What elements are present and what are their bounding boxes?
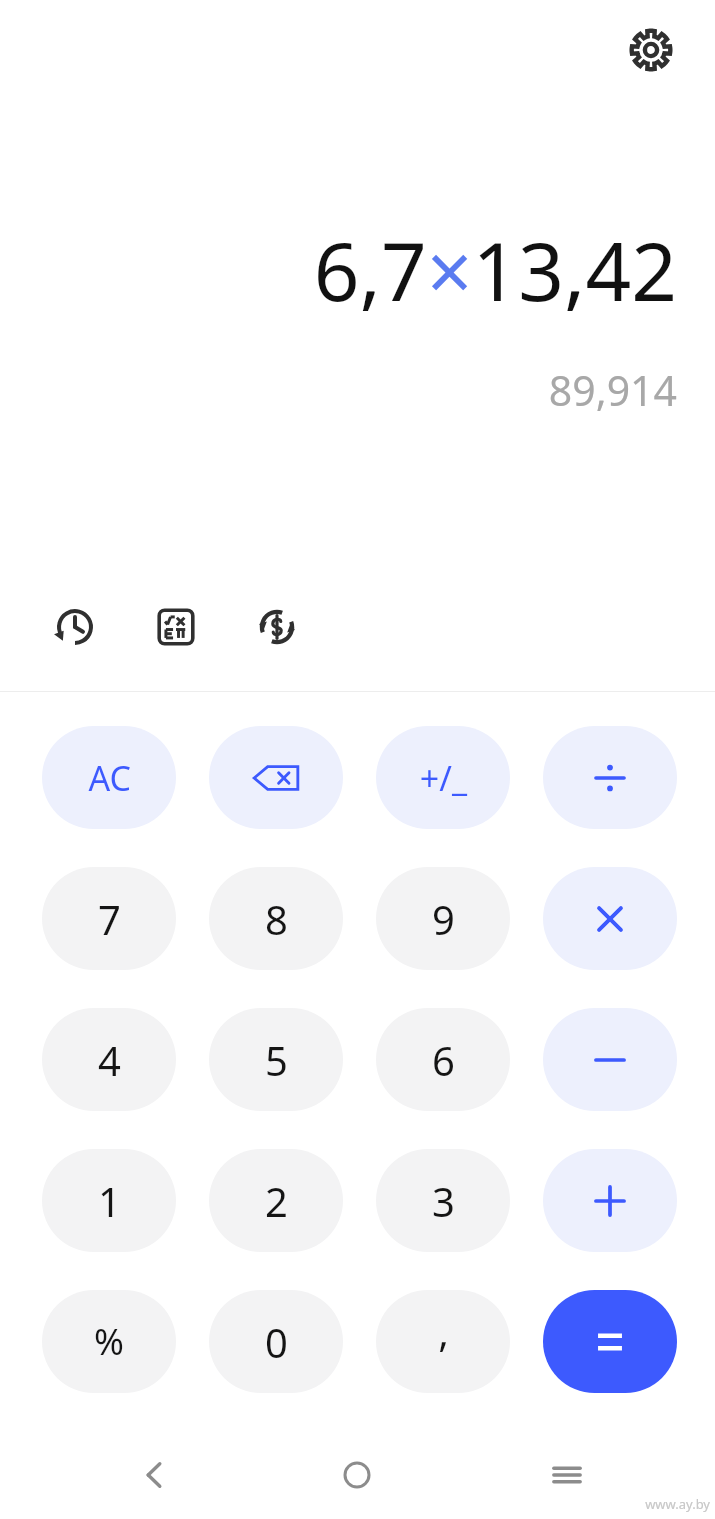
staticText: 1 (98, 1174, 121, 1228)
staticText: 5 (265, 1033, 288, 1087)
button[interactable]: , (376, 1290, 510, 1393)
button[interactable]: 8 (209, 867, 343, 970)
button[interactable]: Back (110, 1432, 200, 1518)
button[interactable]: History (42, 594, 108, 660)
button[interactable]: Plus (543, 1149, 677, 1252)
button[interactable]: 9 (376, 867, 510, 970)
staticText: 8 (265, 892, 288, 946)
staticText: 0 (265, 1315, 288, 1369)
button[interactable]: 3 (376, 1149, 510, 1252)
staticText: 3 (432, 1174, 455, 1228)
button[interactable]: Recent apps (522, 1432, 612, 1518)
button[interactable]: 2 (209, 1149, 343, 1252)
button[interactable]: Multiply (543, 867, 677, 970)
button[interactable]: Home (312, 1432, 402, 1518)
button[interactable]: 1 (42, 1149, 176, 1252)
staticText: 9 (432, 892, 455, 946)
button[interactable]: Divide (543, 726, 677, 829)
button[interactable]: Backspace (209, 726, 343, 829)
staticText: 89,914 (548, 362, 677, 418)
button[interactable]: 5 (209, 1008, 343, 1111)
staticText: 6 (432, 1033, 455, 1087)
button[interactable]: 7 (42, 867, 176, 970)
staticText: , (438, 1304, 449, 1358)
button[interactable]: 0 (209, 1290, 343, 1393)
button[interactable]: 6 (376, 1008, 510, 1111)
staticText: % (94, 1317, 124, 1366)
staticText: 7 (98, 892, 121, 946)
button[interactable]: Scientific calculator (143, 594, 209, 660)
button[interactable]: AC (42, 726, 176, 829)
staticText: www.ay.by (645, 1495, 710, 1513)
button[interactable]: Equals (543, 1290, 677, 1393)
button[interactable]: Settings (611, 10, 691, 90)
button[interactable]: Currency converter (244, 594, 310, 660)
staticText: +/_ (419, 755, 467, 801)
button[interactable]: % (42, 1290, 176, 1393)
staticText: AC (88, 755, 131, 801)
button[interactable]: +/_ (376, 726, 510, 829)
staticText: 4 (98, 1033, 121, 1087)
button[interactable]: 4 (42, 1008, 176, 1111)
staticText: 2 (265, 1174, 288, 1228)
staticText: 6,7×13,42 (313, 215, 677, 324)
button[interactable]: Minus (543, 1008, 677, 1111)
